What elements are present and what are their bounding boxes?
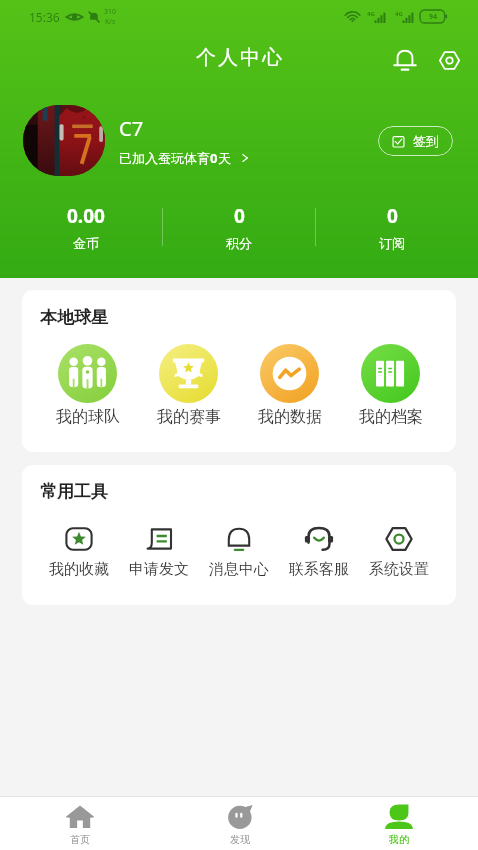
staticText: 签到 xyxy=(413,133,439,149)
button[interactable]: 我的 xyxy=(319,797,478,850)
button[interactable]: 系统设置 xyxy=(359,524,439,579)
staticText: 4G xyxy=(367,10,375,18)
button[interactable]: Notifications xyxy=(386,41,424,79)
staticText: 15:36 xyxy=(29,9,60,25)
staticText: 个人中心 xyxy=(195,45,283,70)
staticText: 我的赛事 xyxy=(157,407,221,427)
button[interactable]: 申请发文 xyxy=(119,524,199,579)
button[interactable]: Avatar xyxy=(23,105,105,176)
staticText: 我的球队 xyxy=(56,407,120,427)
button[interactable]: 联系客服 xyxy=(279,524,359,579)
staticText: 系统设置 xyxy=(369,560,429,579)
staticText: 发现 xyxy=(230,833,250,846)
staticText: 已加入蚕玩体育 xyxy=(119,150,210,166)
staticText: 我的 xyxy=(389,833,409,846)
staticText: 我的数据 xyxy=(258,407,322,427)
staticText: 积分 xyxy=(226,235,252,251)
button[interactable]: 消息中心 xyxy=(199,524,279,579)
button[interactable]: 0.00 xyxy=(10,203,162,251)
button[interactable]: 我的收藏 xyxy=(39,524,119,579)
button[interactable]: 我的赛事 xyxy=(138,344,239,427)
staticText: C7 xyxy=(119,115,144,142)
staticText: 4G xyxy=(395,10,403,18)
button[interactable]: 签到 xyxy=(378,126,453,156)
staticText: 0 xyxy=(234,203,245,229)
button[interactable]: Settings xyxy=(430,41,468,79)
button[interactable]: 我的档案 xyxy=(340,344,441,427)
staticText: 联系客服 xyxy=(289,560,349,579)
staticText: 310 xyxy=(104,7,117,17)
staticText: 天 xyxy=(218,150,231,166)
button[interactable]: 发现 xyxy=(160,797,319,850)
staticText: 0 xyxy=(210,149,218,167)
staticText: 消息中心 xyxy=(209,560,269,579)
staticText: 首页 xyxy=(70,833,90,846)
staticText: 申请发文 xyxy=(129,560,189,579)
button[interactable]: 我的数据 xyxy=(239,344,340,427)
staticText: K/s xyxy=(105,17,116,27)
staticText: 订阅 xyxy=(379,235,405,251)
staticText: 94 xyxy=(429,12,438,22)
staticText: 常用工具 xyxy=(40,481,108,502)
staticText: 0 xyxy=(387,203,398,229)
button[interactable]: 我的球队 xyxy=(37,344,138,427)
staticText: 我的收藏 xyxy=(49,560,109,579)
button[interactable]: 0 xyxy=(163,203,315,251)
staticText: 我的档案 xyxy=(359,407,423,427)
button[interactable]: 首页 xyxy=(0,797,160,850)
staticText: 0.00 xyxy=(67,203,105,229)
staticText: 本地球星 xyxy=(40,307,108,328)
button[interactable]: 0 xyxy=(316,203,468,251)
staticText: 金币 xyxy=(73,235,99,251)
